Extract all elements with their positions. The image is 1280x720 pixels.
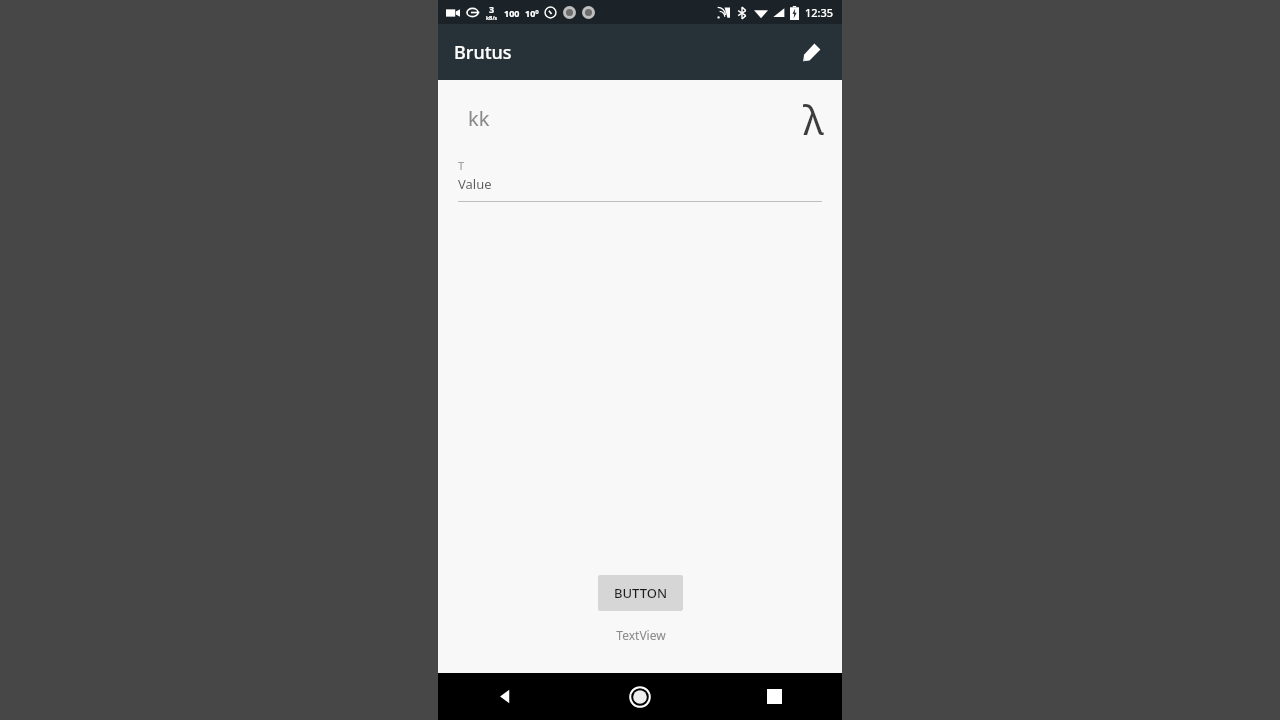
staticText: T [458,158,465,173]
button[interactable]: T [458,158,822,202]
staticText: TextView [616,627,666,643]
button[interactable]: Back [438,673,572,720]
staticText: 100 [504,7,520,19]
staticText: 10º [525,7,539,19]
staticText: kB/s [486,15,498,22]
staticText: λ [803,92,824,146]
staticText: 3 [489,3,495,15]
staticText: BUTTON [614,584,667,602]
button[interactable]: Home [572,673,707,720]
staticText: kk [468,105,490,132]
staticText: Brutus [454,40,512,65]
button[interactable]: Edit [790,30,834,74]
staticText: 12:35 [805,5,834,20]
button[interactable]: Recent apps [707,673,842,720]
button[interactable]: BUTTON [598,575,683,611]
staticText: Value [458,175,492,193]
